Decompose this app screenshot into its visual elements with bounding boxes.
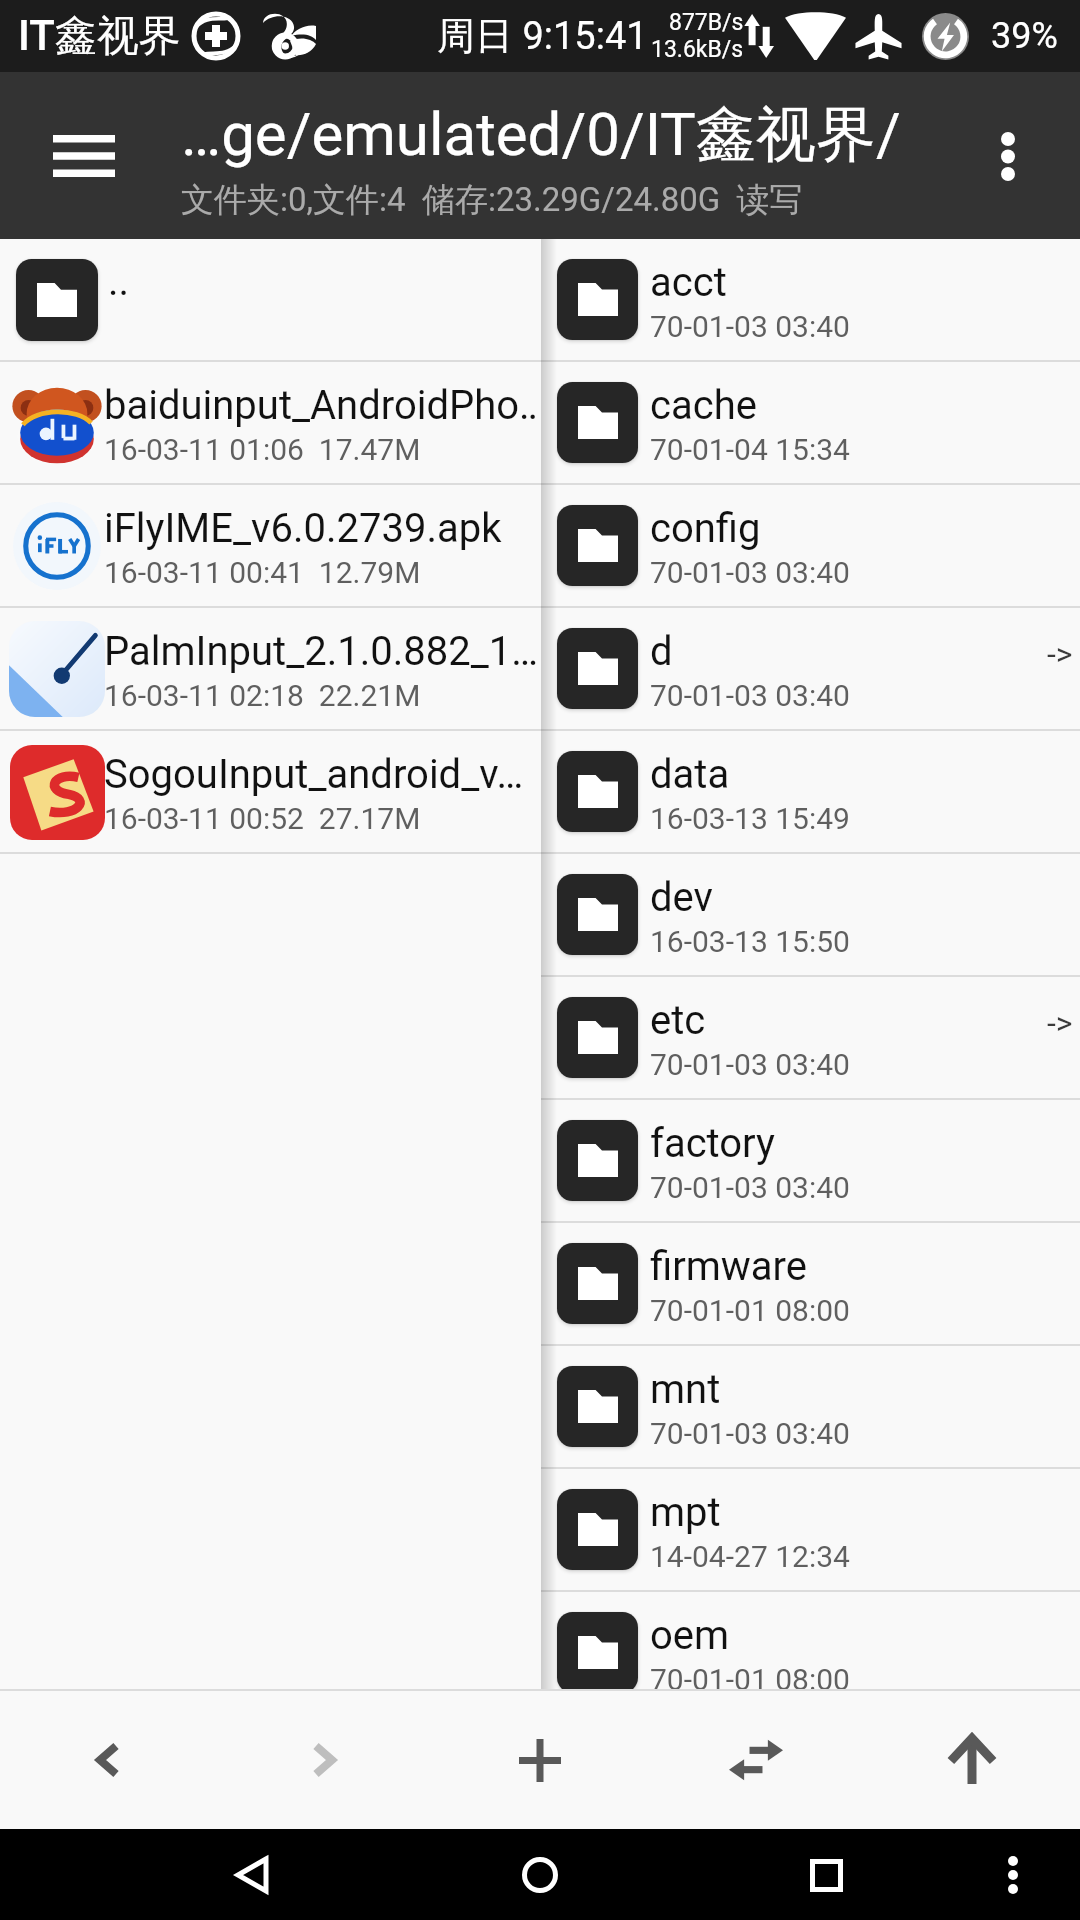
staticText: SogouInput_android_v… (104, 751, 524, 798)
staticText: factory (650, 1120, 775, 1167)
staticText: 39% (991, 15, 1058, 57)
button[interactable]: Forward (216, 1691, 432, 1829)
button[interactable]: acct (541, 239, 1080, 360)
staticText: 70-01-01 08:00 (650, 1293, 850, 1328)
button[interactable]: Up (864, 1691, 1080, 1829)
staticText: -> (1047, 1004, 1073, 1042)
staticText: 14-04-27 12:34 (650, 1539, 850, 1574)
staticText: mpt (650, 1489, 721, 1536)
staticText: .. (108, 258, 130, 305)
staticText: -> (1047, 635, 1073, 673)
button[interactable]: New (432, 1691, 648, 1829)
button[interactable]: dev (541, 854, 1080, 975)
staticText: 文件夹:0,文件:4 储存:23.29G/24.80G 读写 (181, 179, 803, 221)
button[interactable]: Recents (786, 1835, 866, 1915)
button[interactable]: etc (541, 977, 1080, 1098)
staticText: 70-01-03 03:40 (650, 309, 850, 344)
button[interactable]: cache (541, 362, 1080, 483)
staticText: cache (650, 382, 757, 429)
staticText: 70-01-03 03:40 (650, 1170, 850, 1205)
button[interactable]: Menu (973, 1835, 1053, 1915)
staticText: …ge/emulated/0/IT鑫视界/ (181, 97, 901, 173)
staticText: 70-01-01 08:00 (650, 1662, 850, 1689)
staticText: firmware (650, 1243, 808, 1290)
staticText: dev (650, 874, 713, 921)
staticText: data (650, 751, 730, 798)
staticText: 16-03-11 01:06 17.47M (104, 432, 421, 467)
staticText: etc (650, 997, 706, 1044)
button[interactable]: Back (0, 1691, 216, 1829)
staticText: 16-03-11 00:41 12.79M (104, 555, 421, 590)
staticText: 70-01-03 03:40 (650, 1416, 850, 1451)
staticText: mnt (650, 1366, 721, 1413)
staticText: 16-03-11 00:52 27.17M (104, 801, 421, 836)
button[interactable]: factory (541, 1100, 1080, 1221)
staticText: IT鑫视界 (18, 10, 181, 63)
button[interactable]: oem (541, 1592, 1080, 1689)
button[interactable]: SogouInput_android_v… (0, 731, 541, 852)
button[interactable]: More options (958, 106, 1058, 206)
button[interactable]: Home (500, 1835, 580, 1915)
button[interactable]: Swap panes (648, 1691, 864, 1829)
button[interactable]: Back (212, 1835, 292, 1915)
staticText: iFlyIME_v6.0.2739.apk (104, 505, 502, 552)
staticText: PalmInput_2.1.0.882_1… (104, 628, 538, 675)
button[interactable]: config (541, 485, 1080, 606)
staticText: 周日 9:15:41 (437, 12, 648, 60)
button[interactable]: iFlyIME_v6.0.2739.apk (0, 485, 541, 606)
staticText: 70-01-03 03:40 (650, 555, 850, 590)
button[interactable]: baiduinput_AndroidPho… (0, 362, 541, 483)
staticText: d (650, 628, 673, 675)
staticText: 16-03-11 02:18 22.21M (104, 678, 421, 713)
button[interactable]: .. (0, 239, 541, 360)
staticText: 70-01-04 15:34 (650, 432, 850, 467)
button[interactable]: mpt (541, 1469, 1080, 1590)
staticText: 13.6kB/s (651, 36, 744, 63)
button[interactable]: PalmInput_2.1.0.882_1… (0, 608, 541, 729)
button[interactable]: data (541, 731, 1080, 852)
staticText: acct (650, 259, 727, 306)
staticText: baiduinput_AndroidPho… (104, 382, 538, 429)
staticText: config (650, 505, 761, 552)
staticText: oem (650, 1612, 730, 1659)
button[interactable]: firmware (541, 1223, 1080, 1344)
staticText: 70-01-03 03:40 (650, 1047, 850, 1082)
button[interactable]: Open navigation drawer (29, 101, 139, 211)
staticText: 877B/s (669, 9, 744, 36)
staticText: 70-01-03 03:40 (650, 678, 850, 713)
staticText: 16-03-13 15:49 (650, 801, 850, 836)
button[interactable]: d (541, 608, 1080, 729)
button[interactable]: mnt (541, 1346, 1080, 1467)
staticText: 16-03-13 15:50 (650, 924, 850, 959)
